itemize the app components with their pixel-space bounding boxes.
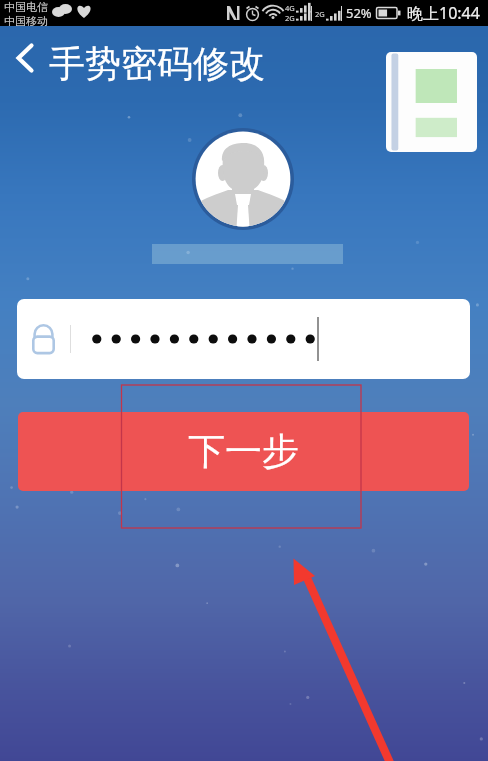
staticText: 中国移动 — [4, 14, 48, 26]
staticText: 2G — [315, 9, 325, 19]
staticText: 52% — [346, 4, 372, 22]
button[interactable]: 下一步 — [18, 412, 469, 491]
button[interactable]: Back — [2, 27, 48, 89]
staticText: 晚上10:44 — [407, 2, 480, 24]
button[interactable]: Avatar — [192, 128, 294, 230]
staticText: 2G — [285, 13, 295, 23]
button[interactable] — [17, 299, 470, 379]
button[interactable]: Notebook — [386, 52, 477, 152]
staticText: 中国电信 — [4, 0, 48, 14]
staticText: 手势密码修改 — [49, 41, 265, 86]
staticText: 下一步 — [188, 428, 299, 475]
staticText: 4G — [285, 3, 295, 13]
